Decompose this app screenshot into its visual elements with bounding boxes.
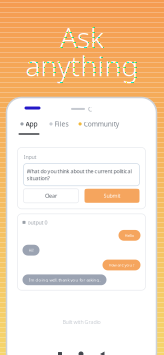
- staticText: C: [88, 104, 92, 113]
- staticText: Submit: [103, 192, 120, 199]
- staticText: Hello: [124, 232, 134, 238]
- staticText: I'm doing well, thank you for asking.: [28, 277, 100, 283]
- staticText: Clear: [45, 192, 57, 199]
- staticText: App: [26, 119, 38, 128]
- staticText: Community: [84, 119, 119, 128]
- staticText: output 0: [27, 219, 47, 226]
- staticText: Input: [23, 153, 36, 161]
- button[interactable]: Submit: [84, 189, 139, 203]
- staticText: Hi!: [28, 247, 33, 253]
- staticText: Files: [55, 119, 69, 128]
- button[interactable]: Community: [78, 119, 119, 135]
- button[interactable]: Clear: [23, 189, 78, 203]
- button[interactable]: Files: [48, 119, 69, 135]
- staticText: How are you?: [108, 262, 134, 268]
- staticText: Ask: [60, 18, 104, 56]
- button[interactable]: App: [18, 119, 39, 135]
- staticText: What do you think about the current poli…: [26, 168, 131, 182]
- staticText: anything: [25, 47, 138, 84]
- staticText: Built with Gradio: [62, 318, 100, 325]
